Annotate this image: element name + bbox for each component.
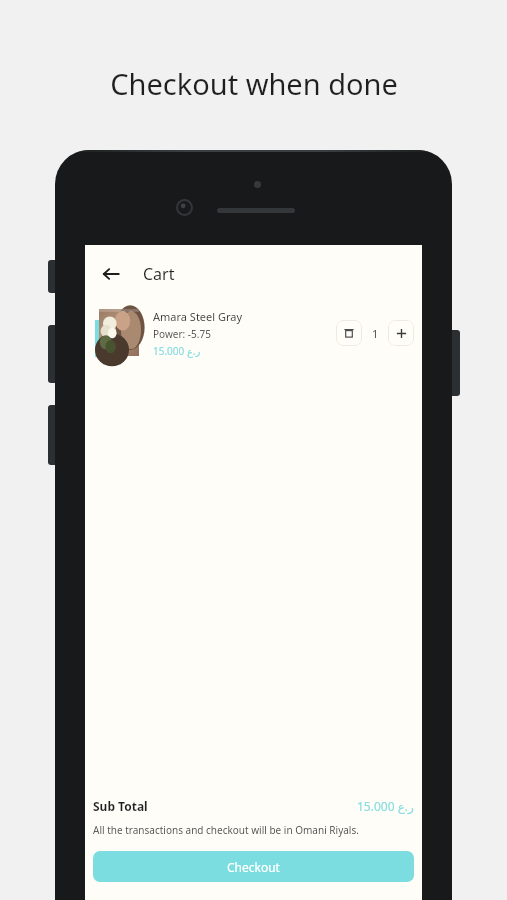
button[interactable]: Back: [93, 256, 129, 292]
button[interactable]: Remove item: [336, 320, 362, 346]
staticText: Checkout when done: [110, 64, 398, 103]
staticText: All the transactions and checkout will b…: [93, 823, 359, 837]
staticText: Checkout: [227, 859, 280, 875]
button[interactable]: Checkout: [93, 851, 414, 882]
staticText: 1: [372, 326, 379, 341]
staticText: Power: -5.75: [153, 327, 211, 341]
staticText: 15.000 ر.ع: [153, 344, 201, 358]
staticText: 15.000 ر.ع: [357, 798, 414, 814]
staticText: Sub Total: [93, 798, 148, 814]
button[interactable]: Amara Steel Gray: [85, 302, 422, 364]
staticText: Amara Steel Gray: [153, 309, 243, 324]
button[interactable]: Increase quantity: [388, 320, 414, 346]
staticText: Cart: [143, 263, 175, 285]
